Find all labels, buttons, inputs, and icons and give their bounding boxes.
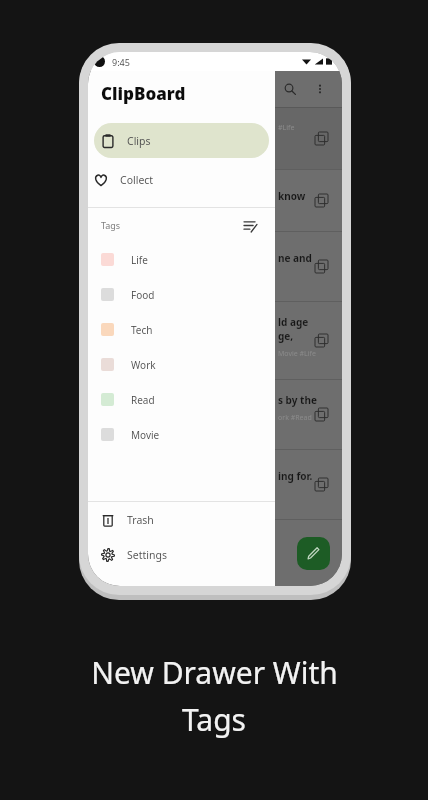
staticText: Movie	[131, 428, 160, 442]
button[interactable]: Clips	[94, 123, 269, 158]
staticText: ge,	[278, 329, 294, 343]
staticText: s by the	[278, 393, 317, 407]
button[interactable]: Settings	[88, 537, 275, 572]
staticText: Tags	[182, 699, 246, 740]
staticText: ne and	[278, 251, 312, 265]
staticText: Tech	[131, 323, 153, 337]
staticText: 9:45	[112, 56, 130, 68]
button[interactable]: New clip	[297, 537, 330, 570]
staticText: Movie #Life	[278, 349, 316, 359]
staticText: know	[278, 189, 306, 203]
staticText: Clips	[127, 134, 151, 148]
button[interactable]: ing for.	[88, 449, 342, 519]
staticText: ClipBoard	[101, 82, 186, 105]
button[interactable]: s by the	[88, 379, 342, 449]
staticText: Food	[131, 288, 155, 302]
staticText: Settings	[127, 548, 167, 562]
button[interactable]: Read	[88, 382, 275, 417]
staticText: ld age	[278, 315, 309, 329]
staticText: Life	[131, 253, 148, 267]
staticText: ing for.	[278, 469, 313, 483]
button[interactable]: Trash	[88, 502, 275, 537]
staticText: Collect	[120, 173, 154, 187]
staticText: Trash	[127, 513, 154, 527]
button[interactable]: ld age	[88, 301, 342, 379]
staticText: Work	[131, 358, 156, 372]
button[interactable]: Edit tags	[241, 216, 259, 234]
button[interactable]: Tech	[88, 312, 275, 347]
button[interactable]: Work	[88, 347, 275, 382]
button[interactable]: Search	[278, 77, 302, 101]
button[interactable]: More options	[308, 77, 332, 101]
button[interactable]: Food	[88, 277, 275, 312]
button[interactable]: Movie	[88, 417, 275, 452]
button[interactable]	[88, 519, 342, 586]
button[interactable]: Life	[88, 242, 275, 277]
button[interactable]: know	[88, 169, 342, 231]
button[interactable]: ne and	[88, 231, 342, 301]
button[interactable]: #Life	[88, 107, 342, 169]
staticText: Read	[131, 393, 155, 407]
button[interactable]: Collect	[88, 162, 275, 197]
staticText: #Life	[278, 123, 295, 133]
staticText: Tags	[101, 219, 121, 231]
staticText: New Drawer With	[91, 652, 338, 693]
staticText: ork #Read	[278, 413, 312, 423]
